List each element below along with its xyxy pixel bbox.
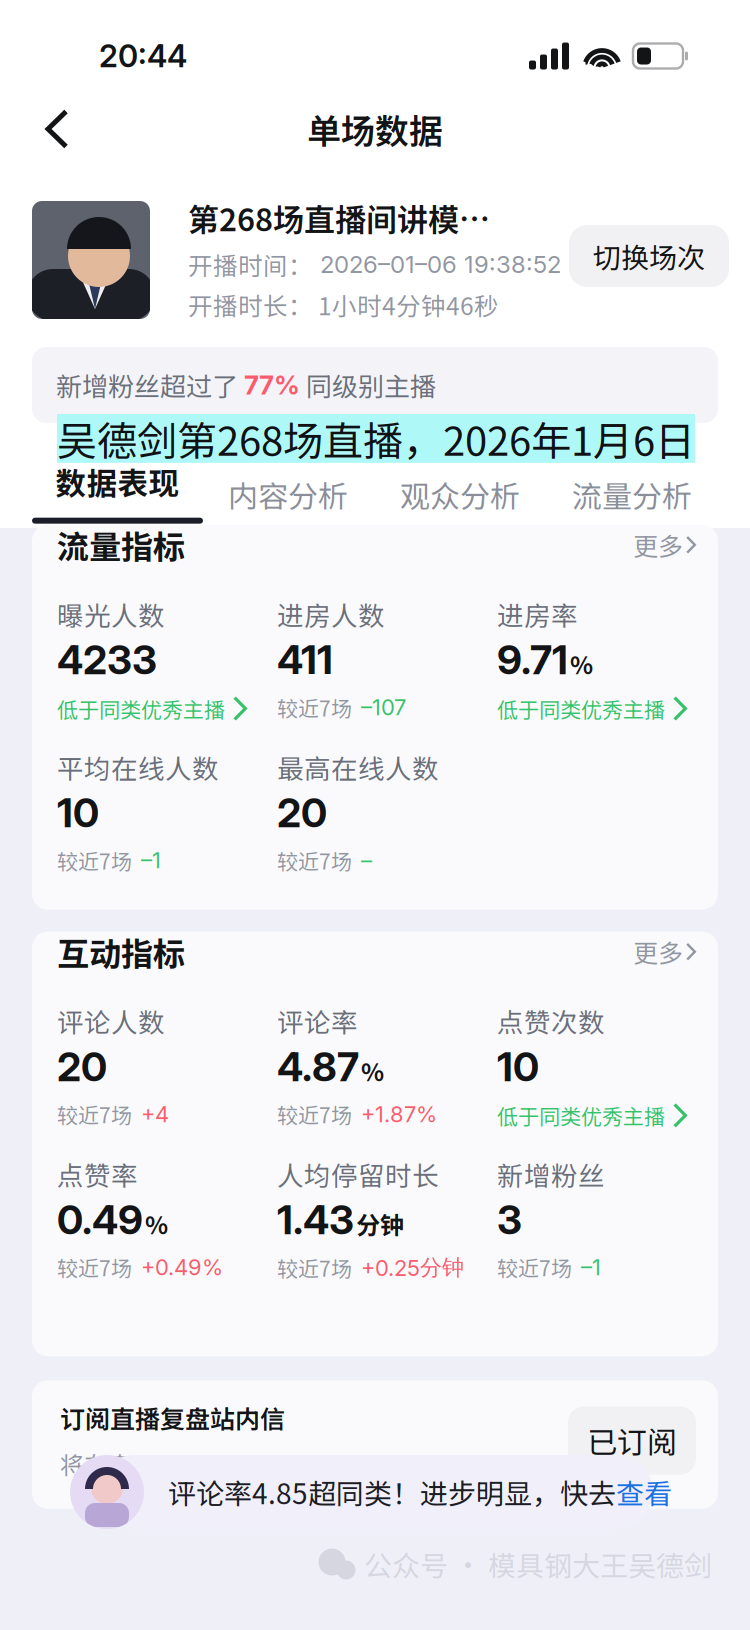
staticText: –1 (141, 849, 161, 871)
staticText: +0.25分钟 (361, 1256, 464, 1279)
staticText: 内容分析 (228, 478, 348, 510)
staticText: 77% (244, 372, 300, 398)
button[interactable]: 低于同类优秀主播 (497, 1087, 687, 1128)
button[interactable]: 低于同类优秀主播 (57, 680, 247, 721)
staticText: 切换场次 (593, 241, 705, 271)
staticText: 更多 (633, 531, 683, 558)
staticText: 同级别主播 (300, 371, 436, 399)
staticText: 较近7场 (277, 1103, 352, 1125)
staticText: 较近7场 (57, 1103, 132, 1125)
staticText: 将在直 (60, 1451, 132, 1477)
staticText: 更多 (633, 938, 683, 965)
staticText: 较近7场 (277, 849, 352, 872)
staticText: 新增粉丝超过了 (56, 371, 244, 399)
button[interactable]: 数据表现 (32, 465, 203, 524)
staticText: 曝光人数 (57, 600, 165, 628)
staticText: 进房率 (497, 600, 578, 628)
staticText: 评论人数 (57, 1007, 165, 1035)
staticText: 新增粉丝 (497, 1160, 605, 1188)
staticText: 单场数据 (307, 111, 443, 147)
staticText: 0.49 (57, 1199, 143, 1240)
staticText: 较近7场 (57, 849, 132, 872)
staticText: –1 (581, 1256, 601, 1278)
staticText: 1小时4分钟46秒 (313, 291, 499, 318)
staticText: 评论率 (277, 1007, 358, 1035)
staticText: 互动指标 (57, 935, 185, 969)
staticText: 已订阅 (587, 1424, 677, 1456)
staticText: 10 (497, 1046, 539, 1087)
button[interactable]: 流量分析 (572, 478, 692, 510)
staticText: 20:44 (99, 40, 187, 72)
staticText: 低于同类优秀主播 (497, 1104, 665, 1127)
staticText: 点赞率 (57, 1160, 138, 1188)
staticText: 低于同类优秀主播 (497, 697, 665, 720)
staticText: – (361, 849, 372, 871)
staticText: 20 (277, 792, 327, 833)
staticText: % (570, 651, 593, 677)
staticText: 2026–01–06 19:38:52 (313, 252, 561, 276)
staticText: 20 (57, 1046, 107, 1087)
button[interactable]: 内容分析 (228, 478, 348, 510)
staticText: 最高在线人数 (277, 753, 439, 781)
staticText: 4233 (57, 639, 157, 680)
staticText: 流量指标 (57, 528, 185, 562)
button[interactable]: 已订阅 (568, 1406, 696, 1474)
button[interactable]: 返回 (22, 98, 92, 160)
staticText: 3 (497, 1199, 522, 1240)
staticText: 吴德剑第268场直播，2026年1月6日 (57, 417, 695, 460)
staticText: 平均在线人数 (57, 753, 219, 781)
staticText: 9.71 (497, 639, 568, 680)
staticText: +4 (141, 1103, 169, 1125)
staticText: +0.49% (141, 1256, 223, 1278)
staticText: 进房人数 (277, 600, 385, 628)
button[interactable]: 切换场次 (569, 225, 729, 287)
staticText: –107 (361, 696, 406, 718)
staticText: % (145, 1211, 168, 1237)
button[interactable]: 低于同类优秀主播 (497, 680, 687, 721)
button[interactable]: 更多 (633, 531, 696, 558)
staticText: 411 (277, 639, 333, 680)
staticText: 较近7场 (57, 1256, 132, 1278)
staticText: 4.87 (277, 1046, 359, 1087)
button[interactable]: 更多 (633, 938, 696, 965)
staticText: 公众号 · 模具钢大王吴德剑 (358, 1549, 712, 1579)
staticText: 1.43 (277, 1199, 354, 1240)
staticText: 开播时长： (188, 291, 313, 318)
staticText: % (361, 1058, 384, 1083)
button[interactable]: 评论率4.85超同类！进步明显，快去 (97, 1455, 653, 1529)
staticText: 10 (57, 792, 99, 833)
staticText: 低于同类优秀主播 (57, 697, 225, 720)
staticText: 人均停留时长 (277, 1160, 439, 1188)
button[interactable]: 观众分析 (400, 478, 520, 510)
staticText: 观众分析 (400, 478, 520, 510)
staticText: 较近7场 (277, 1256, 352, 1279)
staticText: 开播时间： (188, 251, 313, 277)
staticText: 较近7场 (497, 1256, 572, 1278)
staticText: 评论率4.85超同类！进步明显，快去 (168, 1477, 616, 1507)
staticText: 较近7场 (277, 696, 352, 718)
staticText: 点赞次数 (497, 1007, 605, 1035)
staticText: +1.87% (361, 1103, 437, 1125)
staticText: 流量分析 (572, 478, 692, 510)
staticText: 数据表现 (55, 465, 179, 498)
staticText: 查看 (616, 1477, 672, 1507)
staticText: 第268场直播间讲模… (188, 201, 490, 234)
staticText: 分钟 (356, 1211, 404, 1237)
staticText: 订阅直播复盘站内信 (60, 1404, 285, 1431)
